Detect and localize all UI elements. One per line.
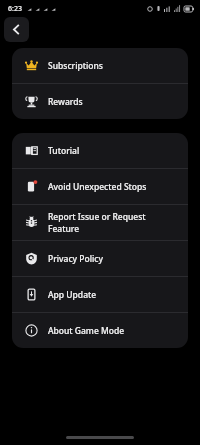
button[interactable]: Back (4, 17, 29, 42)
button[interactable]: Privacy Policy (12, 241, 188, 276)
button[interactable]: Rewards (12, 84, 188, 119)
button[interactable]: Avoid Unexpected Stops (12, 169, 188, 204)
button[interactable]: About Game Mode (12, 313, 188, 348)
staticText: Subscriptions (48, 60, 103, 72)
button[interactable]: App Update (12, 277, 188, 312)
staticText: About Game Mode (48, 325, 125, 337)
staticText: Avoid Unexpected Stops (48, 181, 147, 193)
staticText: Report Issue or Request Feature (48, 211, 178, 235)
staticText: App Update (48, 289, 97, 301)
staticText: Tutorial (48, 145, 80, 157)
button[interactable]: Tutorial (12, 133, 188, 168)
button[interactable]: Report Issue or Request Feature (12, 205, 188, 240)
button[interactable]: Subscriptions (12, 48, 188, 83)
staticText: 6:23 (8, 4, 22, 14)
staticText: Rewards (48, 96, 83, 108)
staticText: Privacy Policy (48, 253, 103, 265)
